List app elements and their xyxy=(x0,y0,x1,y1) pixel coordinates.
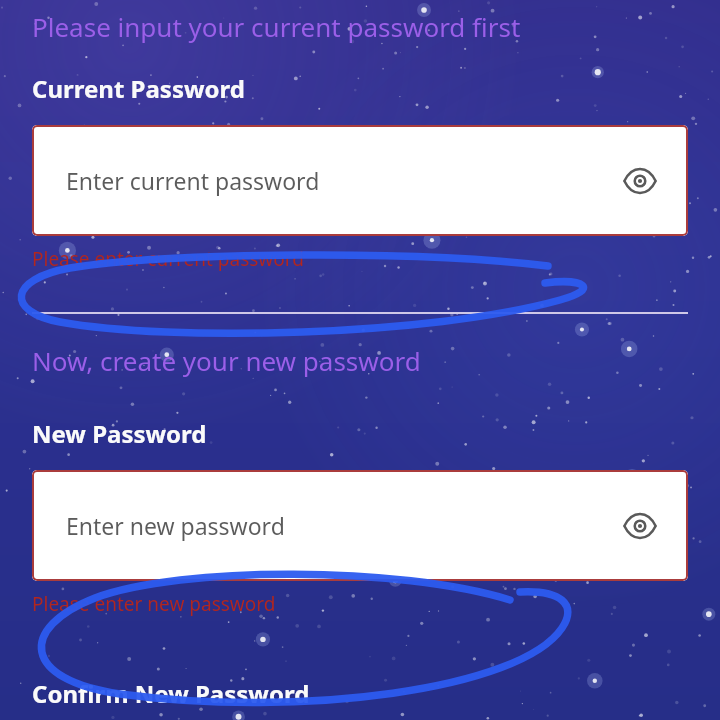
staticText: New Password xyxy=(32,417,207,450)
staticText: Current Password xyxy=(32,72,245,105)
staticText: Confirm New Password xyxy=(32,677,310,710)
staticText: Please input your current password first xyxy=(32,9,521,44)
staticText: Please enter current password xyxy=(32,246,304,272)
button[interactable]: Enter new password xyxy=(32,470,688,581)
staticText: Now, create your new password xyxy=(32,343,421,378)
button[interactable]: Enter current password xyxy=(32,125,688,236)
staticText: Please enter new password xyxy=(32,591,276,617)
button[interactable]: Show password xyxy=(616,157,664,205)
staticText: Enter current password xyxy=(66,165,616,196)
button[interactable]: Show password xyxy=(616,502,664,550)
staticText: Enter new password xyxy=(66,510,616,541)
